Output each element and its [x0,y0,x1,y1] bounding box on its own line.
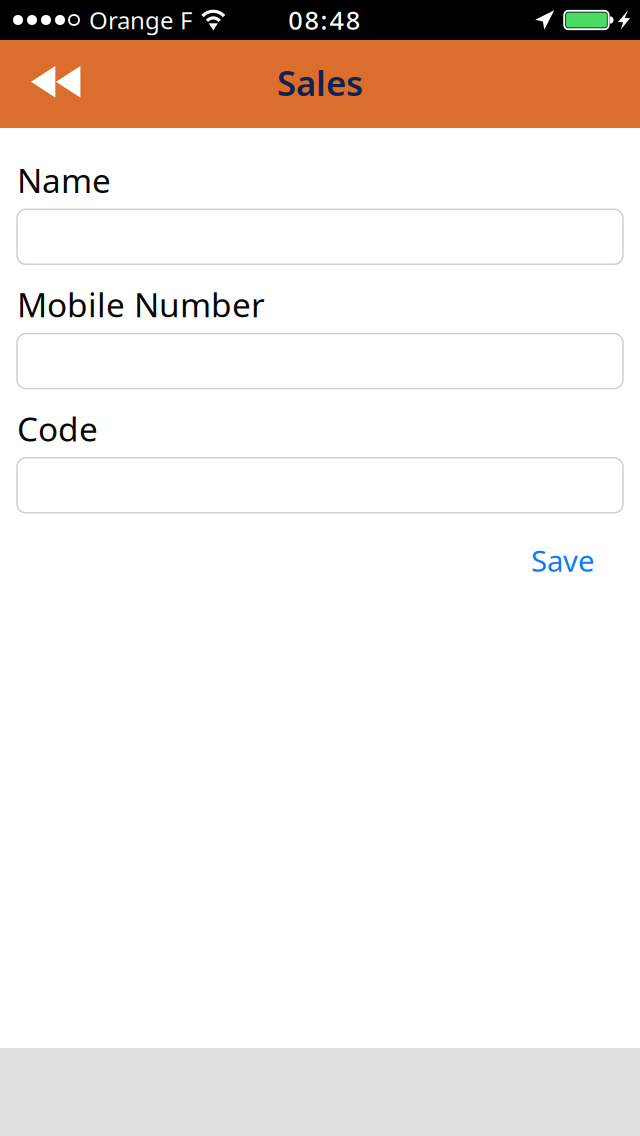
staticText: 08:48 [288,3,360,37]
staticText: Save [531,541,595,580]
button[interactable]: Back [0,40,100,128]
staticText: Code [17,406,98,451]
staticText: Orange F [89,4,192,36]
button[interactable]: Save [521,533,605,588]
staticText: Sales [277,59,363,105]
staticText: Name [17,158,111,202]
staticText: Mobile Number [17,282,265,327]
